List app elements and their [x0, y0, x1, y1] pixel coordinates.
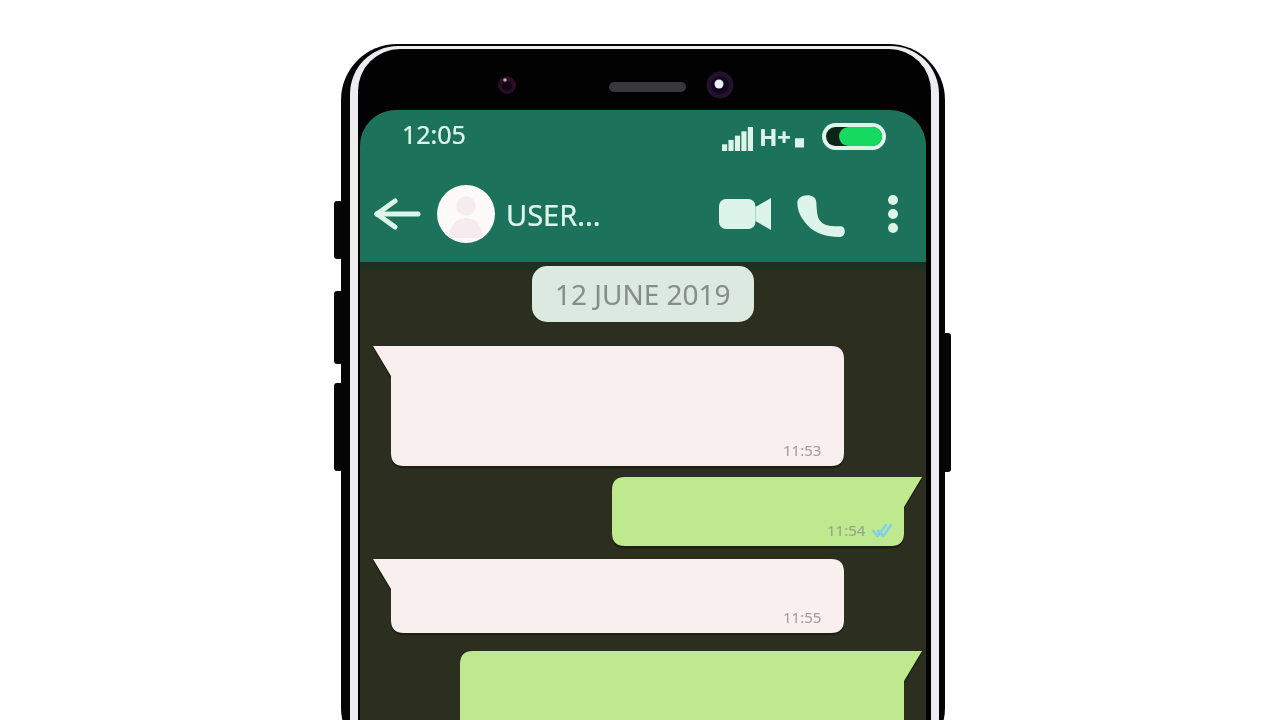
- button[interactable]: Sent message: [460, 651, 922, 720]
- staticText: H+: [759, 120, 792, 153]
- staticText: USER...: [506, 195, 601, 234]
- button[interactable]: Video call: [709, 178, 781, 250]
- button[interactable]: Back: [367, 179, 427, 249]
- button[interactable]: Received message at 11:53: [373, 346, 844, 466]
- staticText: 11:53: [783, 440, 822, 460]
- staticText: 12 JUNE 2019: [555, 275, 731, 313]
- button[interactable]: More options: [867, 188, 919, 240]
- button[interactable]: Received message at 11:55: [373, 559, 844, 633]
- button[interactable]: USER...: [437, 185, 601, 243]
- button[interactable]: 12 JUNE 2019: [532, 266, 754, 322]
- staticText: 11:54: [827, 520, 866, 540]
- button[interactable]: Sent message at 11:54: [612, 477, 922, 546]
- button[interactable]: Call: [787, 183, 849, 245]
- staticText: 11:55: [783, 607, 822, 627]
- staticText: 12:05: [402, 117, 466, 151]
